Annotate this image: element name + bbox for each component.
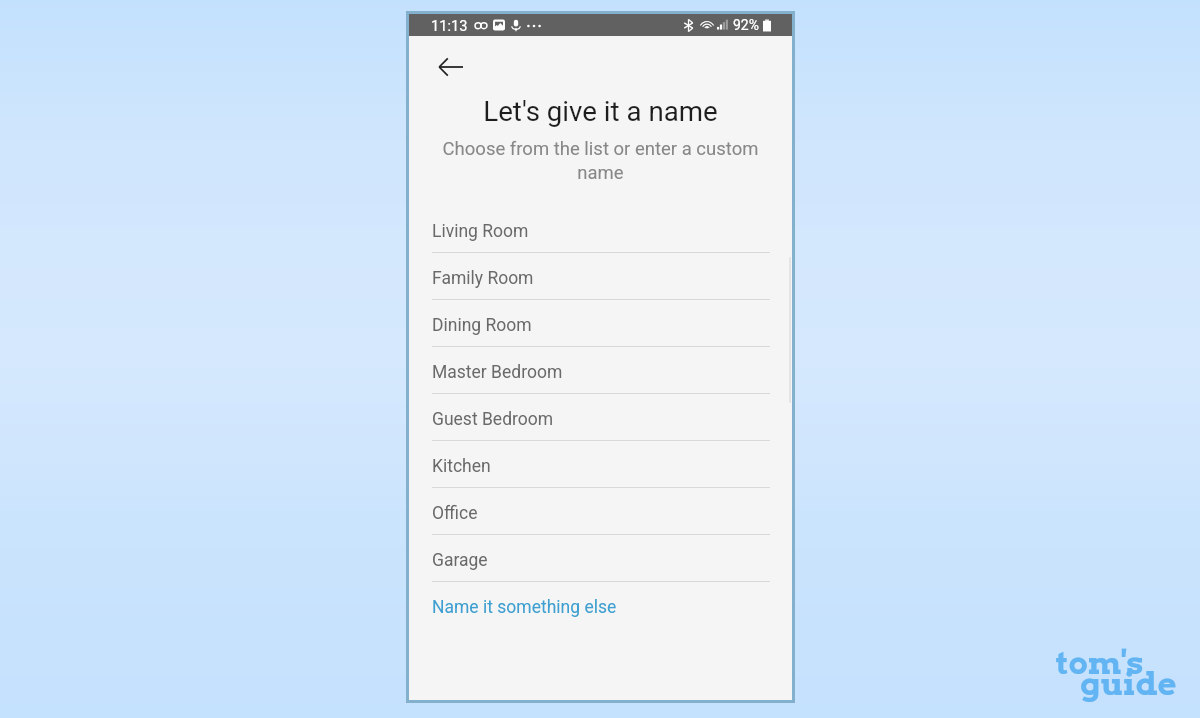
staticText: 92% bbox=[733, 17, 759, 33]
staticText: 11:13 bbox=[431, 17, 468, 34]
staticText: Office bbox=[432, 503, 478, 524]
button[interactable]: Living Room bbox=[432, 206, 770, 253]
button[interactable]: Garage bbox=[432, 535, 770, 582]
button[interactable]: Kitchen bbox=[432, 441, 770, 488]
button[interactable]: Family Room bbox=[432, 253, 770, 300]
button[interactable]: Master Bedroom bbox=[432, 347, 770, 394]
staticText: Kitchen bbox=[432, 456, 491, 477]
staticText: Guest Bedroom bbox=[432, 409, 554, 430]
staticText: tom's bbox=[1056, 643, 1144, 681]
button[interactable]: Dining Room bbox=[432, 300, 770, 347]
staticText: Family Room bbox=[432, 268, 534, 289]
staticText: Dining Room bbox=[432, 315, 532, 336]
staticText: Choose from the list or enter a custom n… bbox=[409, 138, 792, 183]
staticText: Master Bedroom bbox=[432, 362, 563, 383]
button[interactable]: Back bbox=[430, 55, 476, 79]
staticText: Name it something else bbox=[432, 597, 617, 618]
staticText: Living Room bbox=[432, 221, 529, 242]
button[interactable]: Name it something else bbox=[432, 582, 770, 629]
staticText: Let's give it a name bbox=[409, 95, 792, 127]
staticText: Garage bbox=[432, 550, 488, 571]
button[interactable]: Guest Bedroom bbox=[432, 394, 770, 441]
staticText: guide bbox=[1080, 664, 1177, 703]
button[interactable]: Office bbox=[432, 488, 770, 535]
